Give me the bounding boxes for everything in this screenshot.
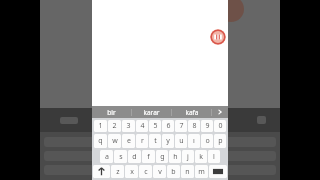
button[interactable]: l xyxy=(208,150,220,163)
button[interactable]: w xyxy=(108,134,121,148)
button[interactable]: 6 xyxy=(162,120,174,132)
button[interactable]: 8 xyxy=(188,120,200,132)
button[interactable]: v xyxy=(153,165,166,178)
staticText: 0 xyxy=(218,121,223,131)
staticText: j xyxy=(187,152,189,162)
button[interactable]: o xyxy=(201,134,213,148)
staticText: y xyxy=(166,136,170,146)
button[interactable]: 5 xyxy=(149,120,161,132)
button[interactable]: 1 xyxy=(94,120,107,132)
button[interactable]: Account badge xyxy=(210,29,226,45)
button[interactable]: karar xyxy=(132,106,171,118)
button[interactable]: a xyxy=(100,150,113,163)
staticText: u xyxy=(179,136,184,146)
staticText: 2 xyxy=(112,121,117,131)
button[interactable]: j xyxy=(182,150,194,163)
button[interactable]: 4 xyxy=(136,120,148,132)
button[interactable]: x xyxy=(125,165,138,178)
button[interactable]: bir xyxy=(92,106,131,118)
staticText: x xyxy=(130,167,134,177)
button[interactable]: b xyxy=(167,165,180,178)
button[interactable]: d xyxy=(128,150,141,163)
staticText: bir xyxy=(107,108,116,117)
staticText: n xyxy=(185,167,190,177)
button[interactable]: k xyxy=(195,150,207,163)
staticText: b xyxy=(171,167,176,177)
staticText: d xyxy=(132,152,137,162)
button[interactable]: 3 xyxy=(122,120,135,132)
button[interactable]: z xyxy=(111,165,124,178)
button[interactable]: g xyxy=(156,150,168,163)
button[interactable]: More suggestions xyxy=(212,106,228,118)
staticText: h xyxy=(173,152,178,162)
staticText: c xyxy=(144,167,148,177)
staticText: v xyxy=(158,167,162,177)
staticText: s xyxy=(119,152,123,162)
staticText: 7 xyxy=(179,121,184,131)
staticText: ı xyxy=(193,136,195,146)
button[interactable]: f xyxy=(142,150,155,163)
staticText: g xyxy=(160,152,165,162)
staticText: 4 xyxy=(140,121,145,131)
button[interactable]: n xyxy=(181,165,194,178)
button[interactable]: 9 xyxy=(201,120,213,132)
staticText: m xyxy=(198,167,205,177)
staticText: r xyxy=(141,136,144,146)
button[interactable]: ı xyxy=(188,134,200,148)
staticText: k xyxy=(199,152,203,162)
staticText: karar xyxy=(143,108,160,117)
button[interactable]: m xyxy=(195,165,208,178)
staticText: w xyxy=(112,136,118,146)
button[interactable]: p xyxy=(214,134,226,148)
button[interactable]: q xyxy=(94,134,107,148)
staticText: q xyxy=(98,136,103,146)
button[interactable]: Backspace xyxy=(209,165,227,178)
button[interactable]: r xyxy=(136,134,148,148)
staticText: 5 xyxy=(153,121,158,131)
staticText: 1 xyxy=(98,121,103,131)
staticText: 6 xyxy=(166,121,171,131)
staticText: z xyxy=(116,167,120,177)
button[interactable]: s xyxy=(114,150,127,163)
staticText: t xyxy=(154,136,157,146)
staticText: 9 xyxy=(205,121,210,131)
button[interactable]: y xyxy=(162,134,174,148)
button[interactable]: 0 xyxy=(214,120,226,132)
staticText: kafa xyxy=(185,108,199,117)
button[interactable]: e xyxy=(122,134,135,148)
staticText: a xyxy=(105,152,109,162)
button[interactable]: Shift xyxy=(93,165,110,178)
staticText: p xyxy=(218,136,223,146)
button[interactable]: t xyxy=(149,134,161,148)
button[interactable]: u xyxy=(175,134,187,148)
staticText: 8 xyxy=(192,121,197,131)
staticText: o xyxy=(205,136,210,146)
button[interactable]: h xyxy=(169,150,181,163)
button[interactable]: c xyxy=(139,165,152,178)
staticText: l xyxy=(213,152,215,162)
staticText: e xyxy=(127,136,131,146)
staticText: 3 xyxy=(126,121,131,131)
button[interactable]: 7 xyxy=(175,120,187,132)
button[interactable]: kafa xyxy=(172,106,211,118)
staticText: f xyxy=(147,152,150,162)
button[interactable]: 2 xyxy=(108,120,121,132)
